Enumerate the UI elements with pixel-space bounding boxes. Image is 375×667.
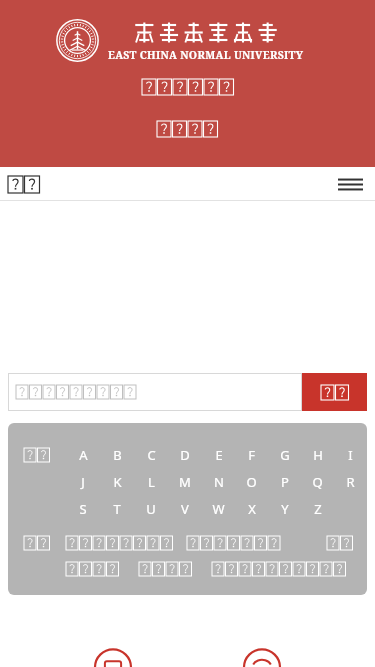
button[interactable] bbox=[302, 373, 367, 411]
button[interactable]: Q bbox=[301, 472, 334, 492]
button[interactable]: S bbox=[66, 499, 100, 519]
staticText: V bbox=[181, 500, 189, 518]
button[interactable]: W bbox=[202, 499, 235, 519]
button[interactable] bbox=[8, 176, 40, 193]
button[interactable] bbox=[327, 536, 353, 550]
button[interactable] bbox=[66, 562, 119, 576]
button[interactable]: A bbox=[66, 445, 100, 465]
button[interactable]: F bbox=[235, 445, 268, 465]
button[interactable]: J bbox=[66, 472, 100, 492]
button[interactable]: E bbox=[202, 445, 235, 465]
button[interactable] bbox=[66, 536, 173, 550]
button[interactable] bbox=[8, 445, 66, 465]
staticText: E bbox=[215, 446, 223, 464]
staticText: P bbox=[281, 473, 289, 491]
staticText: X bbox=[248, 500, 256, 518]
button[interactable]: N bbox=[202, 472, 235, 492]
staticText: L bbox=[148, 473, 155, 491]
staticText: N bbox=[214, 473, 224, 491]
button[interactable]: M bbox=[168, 472, 202, 492]
staticText: H bbox=[313, 446, 323, 464]
button[interactable]: Y bbox=[268, 499, 301, 519]
staticText: I bbox=[348, 446, 353, 464]
button[interactable]: B bbox=[100, 445, 134, 465]
button[interactable]: V bbox=[168, 499, 202, 519]
button[interactable] bbox=[8, 373, 302, 411]
staticText: EAST CHINA NORMAL UNIVERSITY bbox=[108, 48, 304, 62]
staticText: S bbox=[79, 500, 87, 518]
staticText: A bbox=[79, 446, 88, 464]
staticText: D bbox=[180, 446, 190, 464]
staticText: O bbox=[246, 473, 257, 491]
staticText: W bbox=[212, 500, 225, 518]
staticText: C bbox=[147, 446, 156, 464]
button[interactable]: X bbox=[235, 499, 268, 519]
staticText: T bbox=[113, 500, 121, 518]
button[interactable] bbox=[187, 536, 280, 550]
staticText: Q bbox=[312, 473, 323, 491]
button[interactable]: EAST CHINA NORMAL UNIVERSITY bbox=[56, 19, 304, 62]
staticText: M bbox=[179, 473, 191, 491]
button[interactable]: P bbox=[268, 472, 301, 492]
button[interactable]: T bbox=[100, 499, 134, 519]
button[interactable]: R bbox=[334, 472, 367, 492]
staticText: R bbox=[346, 473, 355, 491]
staticText: B bbox=[113, 446, 122, 464]
button[interactable]: Service entry bbox=[78, 634, 148, 658]
staticText: F bbox=[248, 446, 255, 464]
button[interactable]: L bbox=[134, 472, 168, 492]
button[interactable]: C bbox=[134, 445, 168, 465]
staticText: Z bbox=[314, 500, 322, 518]
button[interactable] bbox=[212, 562, 346, 576]
button[interactable]: Z bbox=[301, 499, 334, 519]
button[interactable]: K bbox=[100, 472, 134, 492]
button[interactable]: I bbox=[334, 445, 367, 465]
staticText: K bbox=[113, 473, 122, 491]
button[interactable]: Service entry bbox=[227, 634, 297, 658]
button[interactable]: O bbox=[235, 472, 268, 492]
button[interactable]: G bbox=[268, 445, 301, 465]
staticText: U bbox=[146, 500, 156, 518]
staticText: J bbox=[81, 473, 85, 491]
button[interactable] bbox=[139, 562, 192, 576]
staticText: Y bbox=[281, 500, 289, 518]
button[interactable]: H bbox=[301, 445, 334, 465]
button[interactable]: Menu bbox=[337, 175, 363, 193]
button[interactable]: D bbox=[168, 445, 202, 465]
staticText: G bbox=[280, 446, 290, 464]
button[interactable]: U bbox=[134, 499, 168, 519]
